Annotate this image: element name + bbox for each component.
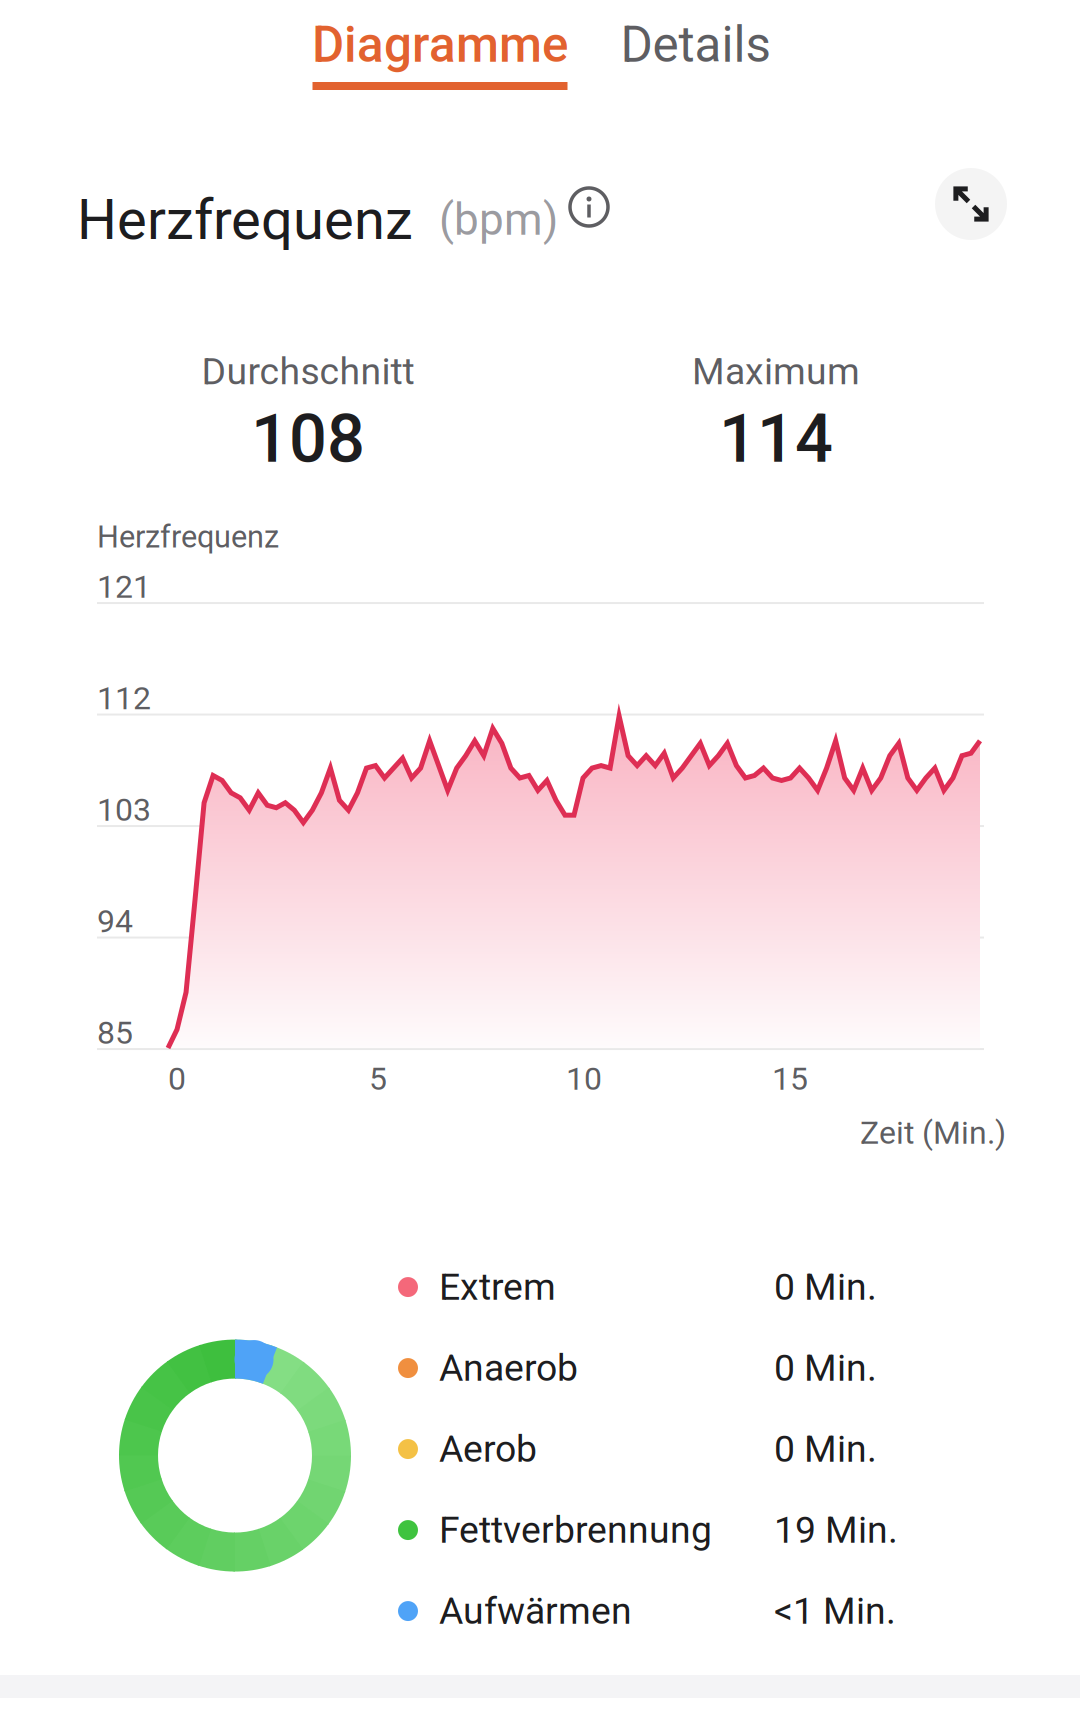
staticText: <1 Min. <box>774 1589 896 1633</box>
staticText: 114 <box>719 400 833 478</box>
staticText: Fettverbrennung <box>439 1508 712 1552</box>
staticText: 112 <box>97 680 151 717</box>
button[interactable]: Diagramme <box>312 16 567 90</box>
staticText: 0 Min. <box>774 1265 877 1309</box>
staticText: Extrem <box>439 1265 556 1309</box>
staticText: 121 <box>97 568 151 606</box>
staticText: 10 <box>566 1060 602 1098</box>
staticText: 0 Min. <box>774 1427 877 1471</box>
staticText: 5 <box>369 1060 387 1098</box>
staticText: Diagramme <box>312 16 568 74</box>
button[interactable]: Details <box>623 16 767 90</box>
staticText: 108 <box>251 400 365 478</box>
button[interactable]: Vollbild <box>935 168 1007 240</box>
staticText: Durchschnitt <box>201 350 414 393</box>
staticText: 0 <box>168 1060 186 1098</box>
staticText: 15 <box>772 1060 808 1098</box>
staticText: 103 <box>97 791 151 829</box>
staticText: Herzfrequenz <box>97 519 279 555</box>
staticText: Aufwärmen <box>439 1589 632 1633</box>
staticText: 85 <box>97 1014 133 1052</box>
staticText: (bpm) <box>439 194 558 246</box>
staticText: 0 Min. <box>774 1346 877 1390</box>
staticText: Aerob <box>439 1427 537 1471</box>
staticText: Maximum <box>692 350 860 393</box>
staticText: Herzfrequenz <box>77 187 413 253</box>
staticText: 94 <box>97 903 133 940</box>
staticText: Zeit (Min.) <box>860 1114 1006 1152</box>
staticText: Details <box>620 16 770 74</box>
button[interactable]: Info <box>565 183 613 231</box>
staticText: Anaerob <box>439 1346 578 1390</box>
staticText: 19 Min. <box>774 1508 898 1552</box>
